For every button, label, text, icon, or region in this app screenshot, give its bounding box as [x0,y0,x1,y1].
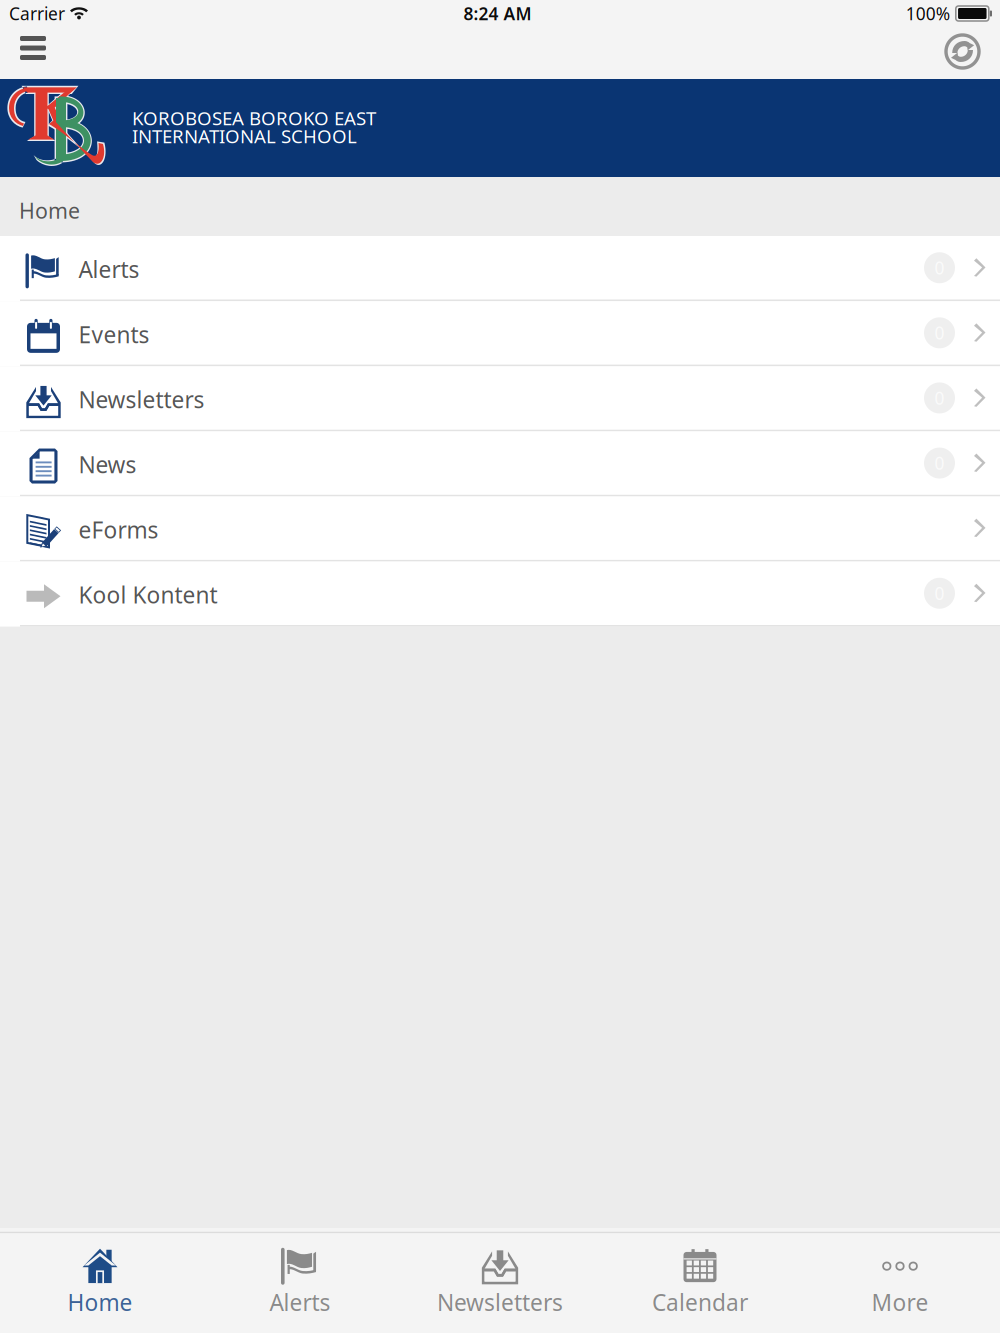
staticText: Newsletters [78,384,204,414]
staticText: 100% [906,2,950,25]
button[interactable]: Alerts [200,1233,400,1329]
button[interactable]: News [0,431,1000,496]
staticText: Alerts [78,254,139,284]
button[interactable]: Kool Kontent [0,561,1000,627]
staticText: eForms [78,515,158,545]
staticText: Kool Kontent [78,580,217,610]
staticText: KOROBOSEA BOROKO EAST [132,106,376,130]
button[interactable]: Newsletters [400,1233,600,1329]
staticText: 0 [934,321,944,344]
staticText: Alerts [269,1287,330,1317]
button[interactable]: Newsletters [0,366,1000,431]
staticText: INTERNATIONAL SCHOOL [132,123,357,148]
button[interactable]: eForms [0,496,1000,561]
button[interactable]: Calendar [600,1233,800,1329]
staticText: Events [78,319,149,349]
button[interactable]: Menu [10,27,56,79]
staticText: 0 [934,451,944,474]
staticText: 8:24 AM [463,2,531,25]
staticText: 0 [934,256,944,279]
staticText: More [871,1287,928,1317]
button[interactable]: Alerts [0,236,1000,301]
staticText: Carrier [9,2,65,25]
staticText: Newsletters [437,1287,563,1317]
button[interactable]: More [800,1233,1000,1329]
staticText: Home [67,1287,132,1317]
button[interactable]: Events [0,301,1000,366]
staticText: 0 [934,386,944,409]
staticText: News [78,449,136,480]
staticText: Home [19,196,80,225]
staticText: 0 [934,582,944,605]
button[interactable]: Refresh [932,27,993,79]
button[interactable]: Home [0,1233,200,1329]
staticText: Calendar [652,1287,748,1317]
